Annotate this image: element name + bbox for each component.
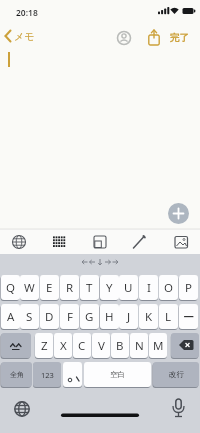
button[interactable] xyxy=(129,232,149,252)
button[interactable]: Z xyxy=(35,333,53,358)
button[interactable]: V xyxy=(92,333,110,358)
button[interactable] xyxy=(166,397,190,421)
staticText: C xyxy=(78,338,86,354)
staticText: P xyxy=(185,280,192,296)
staticText: F xyxy=(67,309,73,325)
staticText: メモ xyxy=(14,30,35,43)
button[interactable]: A xyxy=(1,304,20,329)
staticText: 123 xyxy=(41,370,54,380)
button[interactable]: L xyxy=(159,304,178,329)
staticText: G xyxy=(85,309,94,325)
button[interactable]: H xyxy=(100,304,119,329)
button[interactable]: ー xyxy=(179,304,198,329)
button[interactable]: 全角 xyxy=(1,362,32,387)
button[interactable]: 空白 xyxy=(84,362,151,387)
button[interactable] xyxy=(90,232,110,252)
staticText: D xyxy=(45,309,54,325)
button[interactable] xyxy=(1,333,31,358)
staticText: Z xyxy=(41,338,48,354)
button[interactable]: N xyxy=(130,333,148,358)
staticText: E xyxy=(46,280,53,296)
button[interactable]: D xyxy=(40,304,59,329)
staticText: 20:18 xyxy=(16,7,38,19)
staticText: 空白 xyxy=(110,370,125,379)
staticText: A xyxy=(7,309,15,325)
button[interactable] xyxy=(116,30,132,46)
button[interactable]: B xyxy=(111,333,129,358)
button[interactable]: Y xyxy=(100,275,119,300)
button[interactable]: T xyxy=(80,275,99,300)
button[interactable] xyxy=(168,203,189,224)
staticText: X xyxy=(60,338,67,354)
button[interactable] xyxy=(9,232,29,252)
button[interactable]: U xyxy=(119,275,138,300)
button[interactable]: Q xyxy=(1,275,20,300)
staticText: B xyxy=(116,338,124,354)
button[interactable] xyxy=(171,232,191,252)
staticText: J xyxy=(127,309,131,325)
staticText: N xyxy=(135,338,144,354)
button[interactable] xyxy=(49,232,69,252)
staticText: ー xyxy=(183,310,195,324)
staticText: W xyxy=(24,280,35,296)
staticText: O xyxy=(164,280,173,296)
button[interactable]: O xyxy=(159,275,178,300)
button[interactable]: E xyxy=(40,275,59,300)
button[interactable] xyxy=(171,333,199,358)
button[interactable]: C xyxy=(73,333,91,358)
button[interactable] xyxy=(147,29,161,46)
button[interactable]: R xyxy=(60,275,79,300)
button[interactable]: M xyxy=(149,333,167,358)
button[interactable]: K xyxy=(139,304,158,329)
button[interactable]: I xyxy=(139,275,158,300)
staticText: Q xyxy=(6,280,15,296)
button[interactable]: J xyxy=(119,304,138,329)
button[interactable]: メモ xyxy=(4,29,35,43)
staticText: 全角 xyxy=(10,370,24,379)
staticText: K xyxy=(145,309,153,325)
button[interactable] xyxy=(63,362,82,387)
staticText: U xyxy=(124,280,133,296)
staticText: Y xyxy=(106,280,113,296)
staticText: T xyxy=(86,280,93,296)
button[interactable]: S xyxy=(20,304,39,329)
button[interactable]: 123 xyxy=(33,362,61,387)
button[interactable]: F xyxy=(60,304,79,329)
button[interactable]: 改行 xyxy=(153,362,199,387)
button[interactable]: 完了 xyxy=(170,32,189,44)
staticText: H xyxy=(105,309,114,325)
button[interactable]: P xyxy=(179,275,198,300)
staticText: 改行 xyxy=(169,370,184,379)
staticText: M xyxy=(153,338,164,354)
button[interactable]: X xyxy=(54,333,72,358)
staticText: R xyxy=(66,280,74,296)
staticText: S xyxy=(26,309,33,325)
staticText: L xyxy=(165,309,172,325)
button[interactable]: W xyxy=(20,275,39,300)
button[interactable] xyxy=(10,397,34,421)
staticText: V xyxy=(98,338,105,354)
staticText: I xyxy=(147,280,151,296)
button[interactable]: G xyxy=(80,304,99,329)
